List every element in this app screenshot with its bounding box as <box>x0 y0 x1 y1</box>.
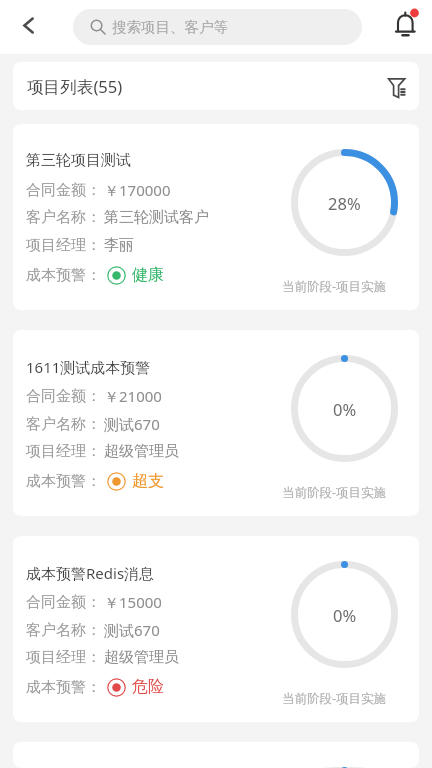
staticText: 超支 <box>132 471 164 491</box>
button[interactable]: 第三轮项目测试 <box>13 124 419 310</box>
staticText: 超级管理员 <box>104 648 179 667</box>
staticText: 当前阶段-项目实施 <box>282 484 387 501</box>
staticText: ￥170000 <box>104 180 171 200</box>
staticText: 项目经理： <box>26 236 101 255</box>
button[interactable]: 成本预警Redis消息 <box>13 536 419 722</box>
staticText: 李丽 <box>104 236 134 255</box>
staticText: 客户名称： <box>26 621 101 640</box>
staticText: 成本预警： <box>26 472 101 491</box>
staticText: 1611测试成本预警 <box>26 357 151 377</box>
button[interactable]: 1611测试成本预警 <box>13 330 419 516</box>
staticText: 测试670 <box>104 414 160 434</box>
staticText: 超级管理员 <box>104 442 179 461</box>
staticText: 28% <box>328 192 361 214</box>
staticText: 健康 <box>132 265 164 285</box>
staticText: 搜索项目、客户等 <box>112 18 228 36</box>
button[interactable]: Notifications <box>388 6 424 46</box>
staticText: 成本预警： <box>26 266 101 285</box>
staticText: 测试670 <box>104 620 160 640</box>
button[interactable]: Filter <box>378 68 414 104</box>
staticText: 0% <box>333 604 357 626</box>
staticText: 0% <box>333 398 357 420</box>
button[interactable]: 测试项目四 <box>13 742 419 768</box>
staticText: 合同金额： <box>26 181 101 200</box>
staticText: 客户名称： <box>26 415 101 434</box>
staticText: 项目经理： <box>26 648 101 667</box>
staticText: 客户名称： <box>26 208 101 227</box>
staticText: 当前阶段-项目实施 <box>282 690 387 707</box>
staticText: 当前阶段-项目实施 <box>282 278 387 295</box>
staticText: ￥21000 <box>104 386 162 406</box>
staticText: 危险 <box>132 677 164 697</box>
staticText: 第三轮测试客户 <box>104 208 209 227</box>
staticText: 合同金额： <box>26 387 101 406</box>
staticText: 合同金额： <box>26 593 101 612</box>
staticText: ￥15000 <box>104 592 162 612</box>
staticText: 项目经理： <box>26 442 101 461</box>
staticText: 成本预警Redis消息 <box>26 563 155 583</box>
staticText: 第三轮项目测试 <box>26 151 131 170</box>
button[interactable]: 搜索项目、客户等 <box>73 9 362 45</box>
staticText: 成本预警： <box>26 678 101 697</box>
staticText: 项目列表(55) <box>27 75 123 98</box>
button[interactable]: Back <box>8 10 48 40</box>
